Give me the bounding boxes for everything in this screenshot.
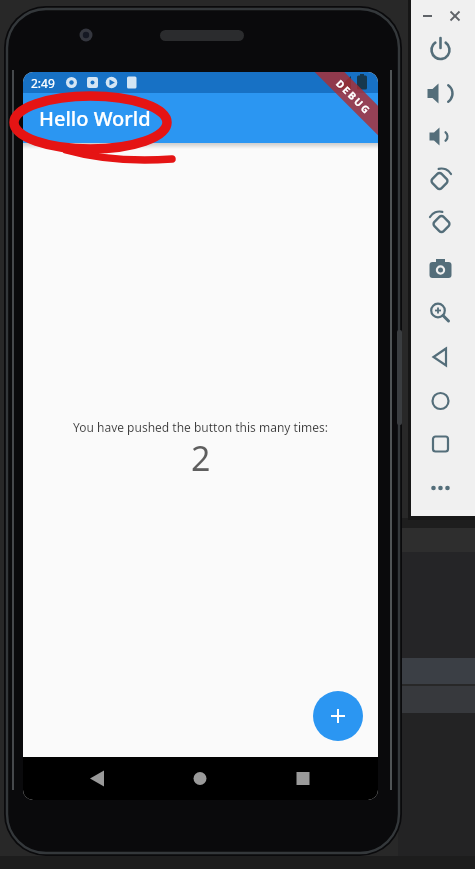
button[interactable]: Hello World <box>23 93 378 143</box>
button[interactable] <box>411 0 475 516</box>
staticText: Hello World <box>39 105 151 132</box>
staticText: You have pushed the button this many tim… <box>73 419 328 435</box>
button[interactable] <box>23 757 378 800</box>
button[interactable] <box>313 691 363 741</box>
staticText: 2 <box>191 435 211 481</box>
staticText: 2:49 <box>31 75 55 91</box>
staticText: DEBUG <box>333 76 375 118</box>
